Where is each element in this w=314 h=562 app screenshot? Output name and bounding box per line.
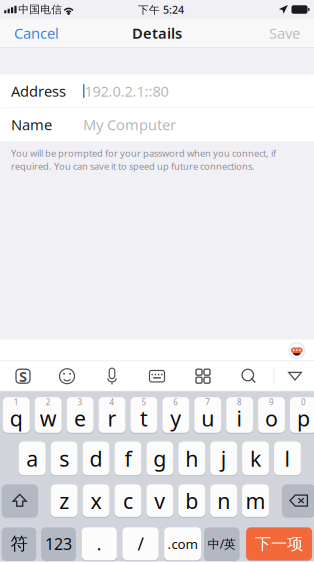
button[interactable]: Voice input xyxy=(90,361,134,391)
staticText: n xyxy=(217,486,230,515)
staticText: s xyxy=(59,444,69,472)
staticText: o xyxy=(265,404,278,432)
button[interactable]: x xyxy=(83,484,109,517)
staticText: r xyxy=(107,404,116,432)
button[interactable]: 2 xyxy=(35,397,62,433)
staticText: a xyxy=(26,444,38,472)
staticText: 4 xyxy=(109,397,114,407)
button[interactable]: 5 xyxy=(130,397,157,433)
button[interactable]: Sogou input xyxy=(1,361,45,391)
staticText: . xyxy=(97,532,102,555)
staticText: b xyxy=(185,486,198,515)
button[interactable]: s xyxy=(51,442,77,475)
staticText: x xyxy=(90,486,101,515)
button[interactable]: a xyxy=(19,442,46,475)
staticText: q xyxy=(10,404,23,432)
button[interactable]: 9 xyxy=(258,397,285,433)
button[interactable]: Address xyxy=(0,74,314,107)
button[interactable]: 符 xyxy=(2,527,36,560)
staticText: t xyxy=(140,404,148,432)
button[interactable]: Search xyxy=(227,361,271,391)
button[interactable]: m xyxy=(242,484,269,517)
staticText: w xyxy=(40,404,57,432)
button[interactable]: f xyxy=(114,442,141,475)
staticText: 7 xyxy=(205,397,210,407)
button[interactable]: z xyxy=(51,484,77,517)
button[interactable]: v xyxy=(146,484,173,517)
staticText: v xyxy=(154,486,165,515)
button[interactable]: 7 xyxy=(194,397,221,433)
staticText: Details xyxy=(132,23,182,43)
staticText: 192.0.2.1::80 xyxy=(84,81,168,101)
staticText: 8 xyxy=(237,397,242,407)
staticText: h xyxy=(185,444,198,472)
staticText: 符 xyxy=(10,533,27,554)
staticText: Address xyxy=(11,81,66,101)
staticText: Name xyxy=(11,115,52,134)
button[interactable]: n xyxy=(210,484,237,517)
button[interactable]: Cancel xyxy=(0,19,71,47)
button[interactable]: More tools xyxy=(181,361,225,391)
button[interactable]: k xyxy=(242,442,269,475)
staticText: 9 xyxy=(269,397,274,407)
staticText: e xyxy=(74,404,86,432)
staticText: 123 xyxy=(45,533,72,554)
button[interactable]: 6 xyxy=(162,397,189,433)
button[interactable]: 0 xyxy=(290,397,314,433)
button[interactable]: 4 xyxy=(99,397,125,433)
staticText: 6 xyxy=(173,397,178,407)
staticText: 下一项 xyxy=(255,534,303,554)
staticText: z xyxy=(59,486,69,515)
button[interactable] xyxy=(2,484,38,517)
button[interactable]: 中/英 xyxy=(204,527,239,560)
staticText: .com xyxy=(168,535,198,553)
staticText: Cancel xyxy=(14,23,59,43)
staticText: f xyxy=(124,444,131,472)
button[interactable]: c xyxy=(114,484,141,517)
button[interactable]: h xyxy=(178,442,205,475)
staticText: 0 xyxy=(301,397,306,407)
staticText: u xyxy=(201,404,214,432)
button[interactable]: Emoji xyxy=(45,361,89,391)
staticText: d xyxy=(89,444,102,472)
staticText: required. You can save it to speed up fu… xyxy=(11,160,255,172)
staticText: S xyxy=(19,366,27,386)
staticText: c xyxy=(123,486,133,515)
button[interactable]: j xyxy=(210,442,237,475)
staticText: l xyxy=(284,444,290,472)
staticText: 1 xyxy=(14,397,19,407)
button[interactable]: g xyxy=(146,442,173,475)
button[interactable]: l xyxy=(274,442,301,475)
staticText: m xyxy=(246,486,266,515)
button[interactable]: Sogou notifications xyxy=(285,340,309,361)
staticText: p xyxy=(297,404,310,432)
button[interactable]: 1 xyxy=(3,397,30,433)
staticText: j xyxy=(221,444,227,472)
button[interactable]: Save xyxy=(257,19,314,47)
staticText: 中国电信 xyxy=(18,3,62,16)
button[interactable]: / xyxy=(122,527,159,560)
button[interactable]: 123 xyxy=(41,527,76,560)
button[interactable]: d xyxy=(83,442,109,475)
button[interactable]: Hide keyboard xyxy=(275,361,314,391)
staticText: 5 xyxy=(141,397,146,407)
staticText: You will be prompted for your password w… xyxy=(11,147,276,159)
staticText: / xyxy=(137,532,143,555)
staticText: My Computer xyxy=(83,115,176,134)
button[interactable]: 下一项 xyxy=(246,527,312,560)
button[interactable]: 8 xyxy=(226,397,253,433)
button[interactable]: . xyxy=(82,527,117,560)
staticText: 2 xyxy=(46,397,51,407)
button[interactable]: Name xyxy=(0,108,314,141)
button[interactable]: 3 xyxy=(67,397,93,433)
button[interactable]: Keyboard layout xyxy=(135,361,179,391)
staticText: i xyxy=(237,404,243,432)
button[interactable]: b xyxy=(178,484,205,517)
staticText: 中/英 xyxy=(208,536,236,552)
staticText: k xyxy=(250,444,261,472)
staticText: 3 xyxy=(78,397,83,407)
staticText: Save xyxy=(269,23,300,43)
button[interactable]: .com xyxy=(164,527,201,560)
button[interactable] xyxy=(282,484,314,517)
staticText: y xyxy=(170,404,181,432)
